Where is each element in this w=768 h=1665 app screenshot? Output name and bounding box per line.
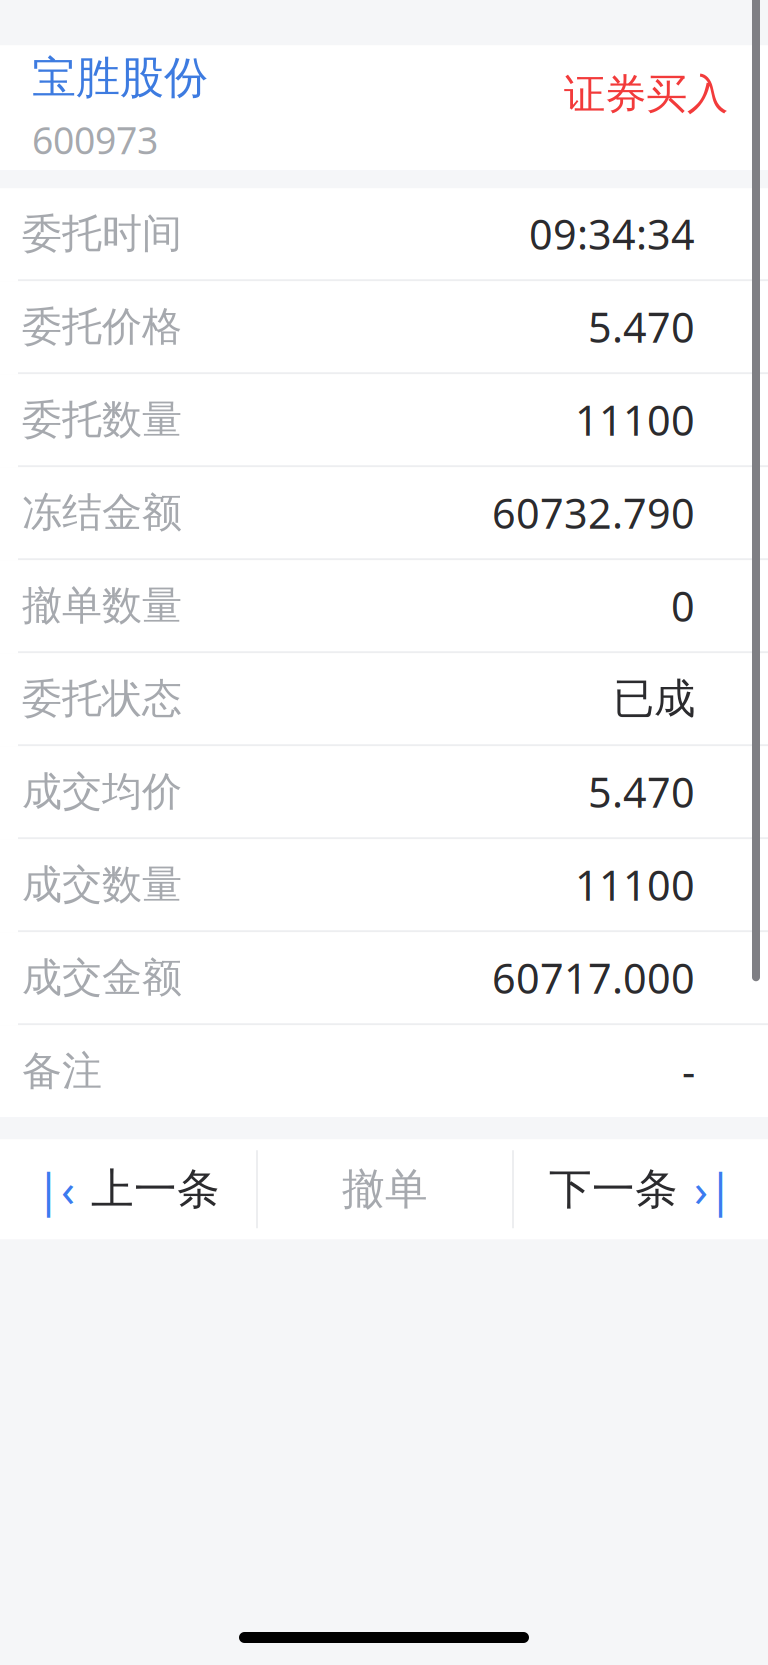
staticText: 宝胜股份 — [32, 51, 208, 105]
staticText: 委托数量 — [22, 395, 182, 444]
staticText: 冻结金额 — [22, 488, 182, 537]
staticText: 撤单数量 — [22, 581, 182, 630]
staticText: 成交均价 — [22, 767, 182, 816]
staticText: 上一条 — [91, 1163, 220, 1215]
staticText: 委托状态 — [22, 674, 182, 723]
button[interactable]: |‹ — [0, 1139, 256, 1239]
staticText: 备注 — [22, 1047, 102, 1096]
staticText: 60717.000 — [492, 950, 695, 1005]
button[interactable]: 下一条 — [514, 1139, 768, 1239]
staticText: 11100 — [575, 392, 695, 447]
staticText: 09:34:34 — [529, 206, 695, 261]
staticText: 60732.790 — [492, 485, 695, 540]
staticText: 11100 — [575, 857, 695, 912]
staticText: 下一条 — [549, 1163, 678, 1215]
staticText: 成交金额 — [22, 953, 182, 1002]
staticText: 证券买入 — [564, 69, 728, 120]
staticText: 5.470 — [588, 764, 695, 819]
staticText: 撤单 — [342, 1163, 428, 1215]
button[interactable]: 撤单 — [258, 1139, 512, 1239]
staticText: 0 — [671, 578, 695, 633]
staticText: 600973 — [32, 115, 158, 165]
staticText: ›| — [694, 1159, 733, 1219]
staticText: 委托价格 — [22, 302, 182, 351]
staticText: 5.470 — [588, 299, 695, 354]
staticText: |‹ — [36, 1159, 75, 1219]
staticText: 委托时间 — [22, 209, 182, 258]
staticText: - — [682, 1044, 695, 1099]
staticText: 已成 — [613, 673, 695, 724]
staticText: 成交数量 — [22, 860, 182, 909]
